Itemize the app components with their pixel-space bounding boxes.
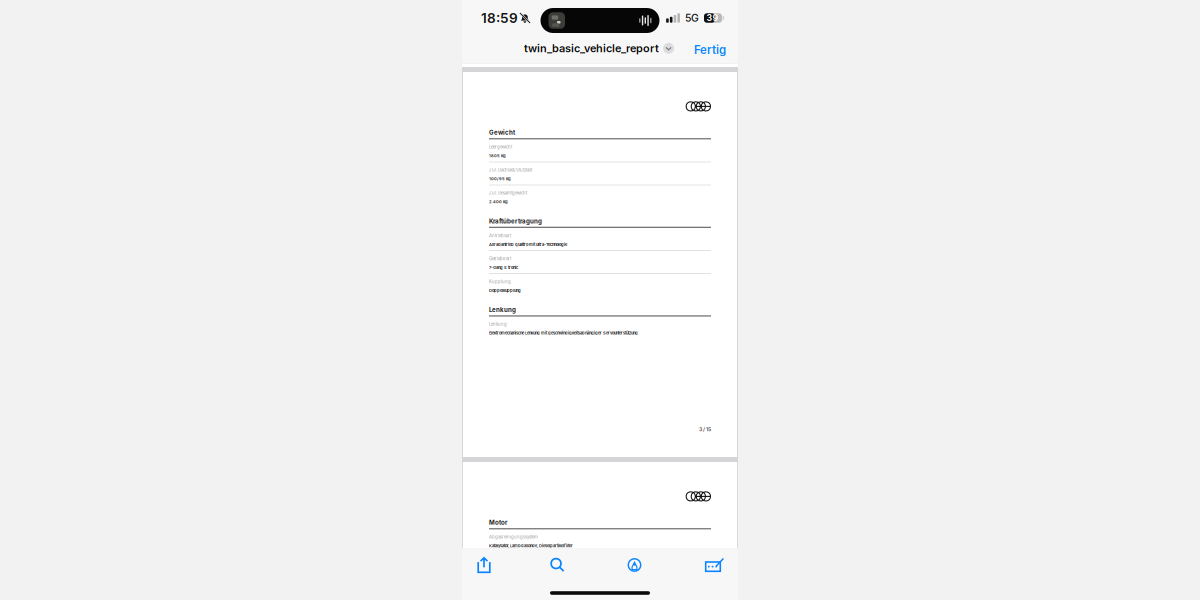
staticText: 3 / 15 [699, 426, 711, 432]
staticText: Leergewicht [489, 144, 512, 150]
staticText: Antriebsart [489, 233, 511, 238]
staticText: 1805 kg [489, 153, 506, 158]
staticText: Motor [489, 519, 507, 526]
button[interactable]: Fertig [689, 39, 731, 61]
staticText: Doppelkupplung [489, 288, 521, 293]
staticText: twin_basic_vehicle_report [524, 42, 659, 55]
staticText: Elektromechanische Lenkung mit geschwind… [489, 330, 638, 335]
staticText: Fertig [694, 43, 726, 57]
staticText: Zul. Dachlast/Stützlast [489, 167, 532, 173]
staticText: Allradantrieb quattro mit ultra-Technolo… [489, 242, 567, 247]
staticText: Getriebeart [489, 256, 511, 261]
staticText: 100/95 kg [489, 176, 511, 181]
staticText: Gewicht [489, 129, 515, 136]
staticText: 39 [706, 12, 718, 23]
button[interactable]: twin_basic_vehicle_report [524, 38, 674, 59]
button[interactable]: Share [469, 553, 499, 576]
staticText: 18:59 [481, 10, 518, 26]
staticText: 5G [685, 12, 699, 24]
staticText: Kupplung [489, 279, 511, 284]
staticText: Zul. Gesamtgewicht [489, 190, 527, 196]
staticText: Katalysator, Lambdasonde, Dieselpartikel… [489, 543, 573, 548]
button[interactable]: Search [542, 553, 572, 576]
staticText: 2.400 kg [489, 199, 508, 204]
staticText: Kraftübertragung [489, 217, 542, 225]
button[interactable]: Markup [619, 553, 649, 576]
staticText: Abgasreinigungssystem [489, 534, 538, 540]
staticText: Lenkung [489, 306, 516, 313]
staticText: Lenkung [489, 322, 507, 327]
staticText: 7-Gang S tronic [489, 265, 518, 270]
button[interactable]: Annotate [699, 553, 729, 576]
